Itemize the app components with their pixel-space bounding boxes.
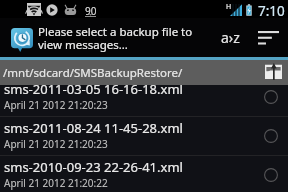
- staticText: sms-2011-08-24 11-45-28.xml: [4, 119, 183, 137]
- staticText: sms-2010-09-23 22-26-41.xml: [4, 158, 183, 176]
- staticText: /mnt/sdcard/SMSBackupRestore/: [3, 65, 183, 81]
- button[interactable]: sms-2011-08-24 11-45-28.xml: [0, 117, 288, 155]
- staticText: 7:10: [258, 2, 285, 20]
- button[interactable]: Sort alphabetically: [205, 18, 249, 57]
- staticText: a›z: [221, 28, 240, 47]
- button[interactable]: /mnt/sdcard/SMSBackupRestore/: [0, 60, 288, 85]
- staticText: H: [226, 2, 232, 12]
- button[interactable]: Sort order: [249, 18, 288, 57]
- staticText: April 21 2012 21:20:22: [4, 176, 108, 190]
- staticText: April 21 2012 21:20:23: [4, 98, 108, 112]
- button[interactable]: App icon: [11, 28, 33, 52]
- staticText: sms-2011-03-05 16-16-18.xml: [4, 80, 183, 98]
- button[interactable]: sms-2011-03-05 16-16-18.xml: [0, 78, 288, 116]
- staticText: 90: [85, 4, 97, 18]
- staticText: April 21 2012 21:20:23: [4, 137, 108, 151]
- staticText: Please select a backup file to view mess…: [38, 24, 196, 53]
- button[interactable]: Up one folder: [265, 64, 282, 79]
- button[interactable]: sms-2010-09-23 22-26-41.xml: [0, 156, 288, 192]
